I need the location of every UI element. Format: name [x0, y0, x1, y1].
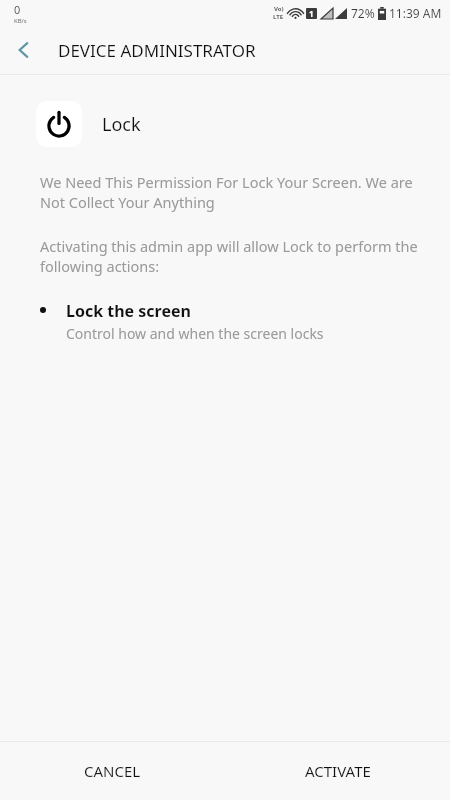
staticText: We Need This Permission For Lock Your Sc… — [40, 172, 424, 212]
staticText: 11:39 AM — [389, 5, 442, 21]
staticText: ACTIVATE — [305, 761, 371, 781]
staticText: Activating this admin app will allow Loc… — [40, 236, 424, 276]
staticText: CANCEL — [84, 761, 141, 781]
button[interactable]: Back — [0, 26, 48, 74]
staticText: Lock — [102, 112, 141, 137]
staticText: Vo) — [274, 5, 284, 13]
button[interactable]: ACTIVATE — [225, 742, 450, 800]
staticText: 72% — [351, 5, 375, 21]
staticText: 0 — [14, 2, 21, 17]
staticText: DEVICE ADMINISTRATOR — [58, 39, 256, 62]
staticText: Lock the screen — [66, 300, 191, 322]
staticText: 1 — [309, 8, 314, 19]
staticText: KB/s — [14, 17, 27, 25]
staticText: LTE — [273, 13, 284, 21]
button[interactable]: CANCEL — [0, 742, 225, 800]
staticText: Control how and when the screen locks — [66, 324, 324, 343]
